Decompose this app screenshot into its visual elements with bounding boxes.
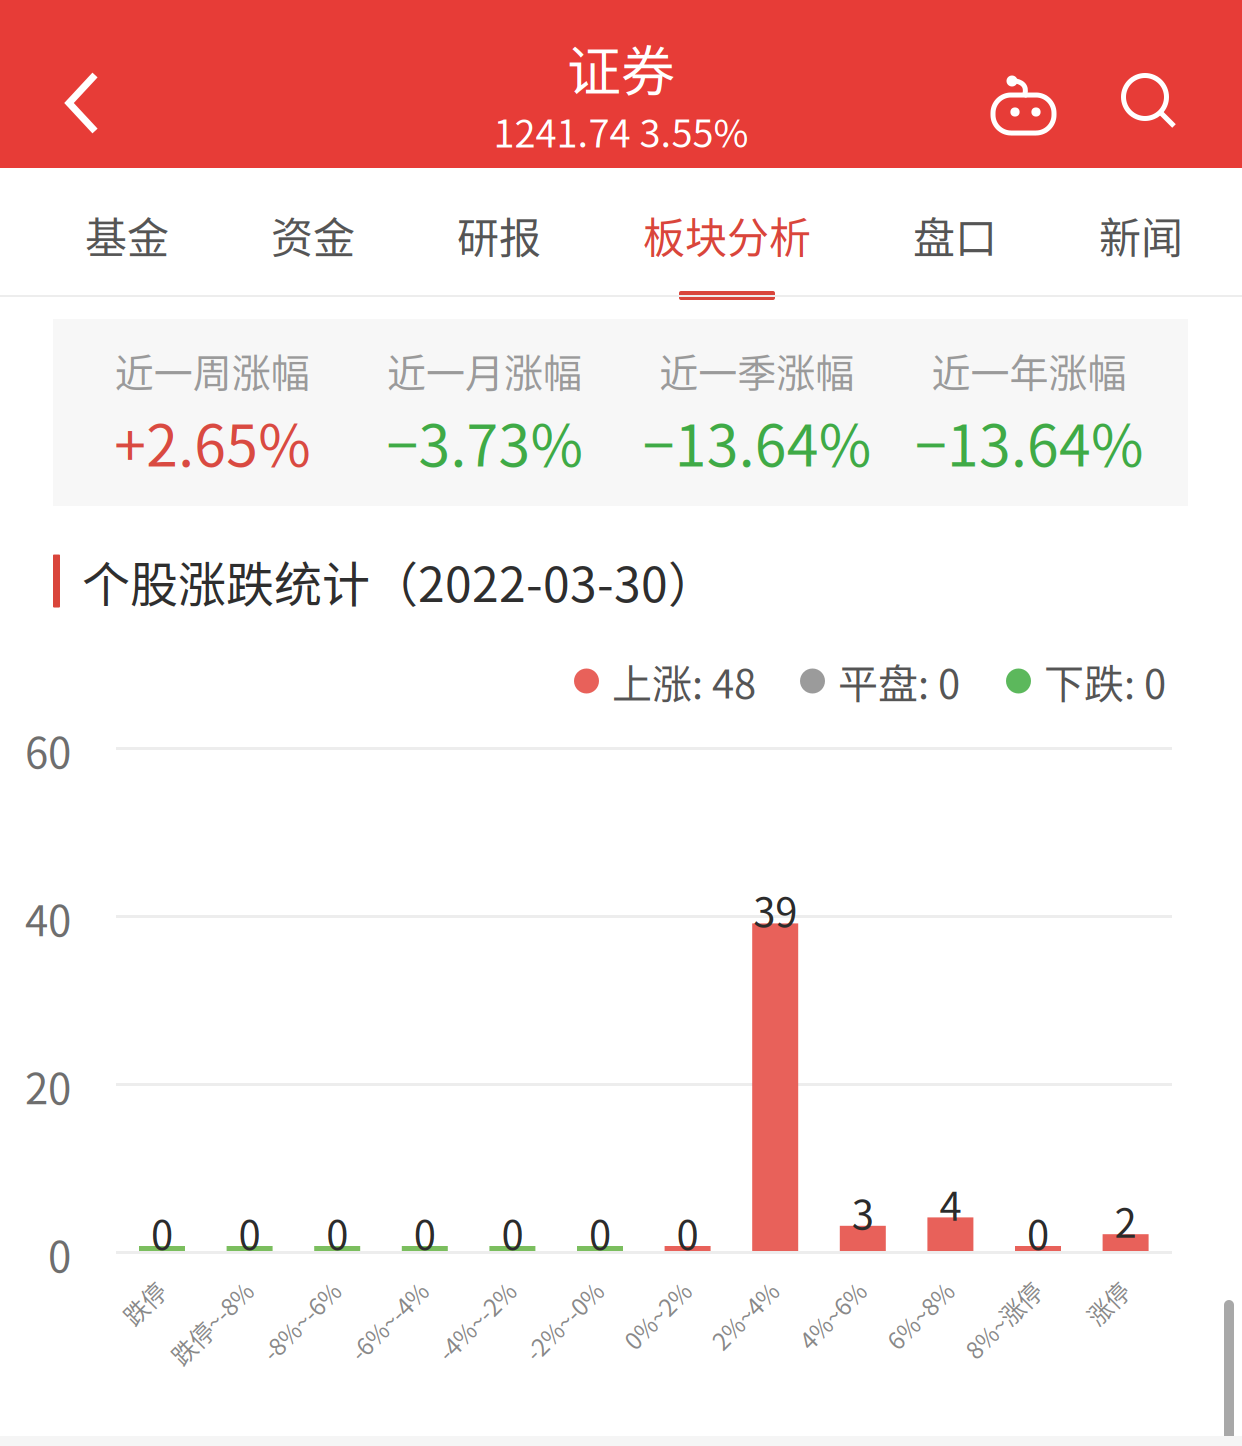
staticText: 0 <box>501 1203 523 1261</box>
staticText: 0 <box>239 1203 261 1261</box>
staticText: 0 <box>48 1224 71 1284</box>
staticText: 6%~8% <box>849 1276 932 1310</box>
staticText: 4%~6% <box>762 1276 845 1310</box>
staticText: 60 <box>25 720 71 780</box>
staticText: 跌停 <box>96 1276 144 1310</box>
button[interactable]: Search <box>1121 73 1177 129</box>
staticText: 近一周涨幅 <box>115 342 310 398</box>
staticText: 板块分析 <box>643 205 811 265</box>
staticText: 8%~涨停 <box>924 1276 1020 1310</box>
staticText: 2 <box>1115 1191 1137 1249</box>
staticText: 基金 <box>85 205 169 265</box>
staticText: −13.64% <box>643 400 871 483</box>
staticText: −3.73% <box>386 400 582 483</box>
button[interactable]: 新闻 <box>1099 168 1183 301</box>
staticText: 近一月涨幅 <box>387 342 582 398</box>
button[interactable]: 研报 <box>457 168 541 301</box>
staticText: +2.65% <box>114 400 310 483</box>
staticText: 个股涨跌统计（2022-03-30） <box>82 546 716 616</box>
staticText: 跌停~-8% <box>128 1276 232 1310</box>
staticText: -8%~-6% <box>220 1276 319 1310</box>
staticText: -2%~-0% <box>483 1276 582 1310</box>
staticText: 0 <box>151 1203 173 1261</box>
staticText: 新闻 <box>1099 205 1183 265</box>
staticText: −13.64% <box>915 400 1143 483</box>
staticText: 盘口 <box>913 205 997 265</box>
staticText: 4 <box>939 1174 961 1232</box>
staticText: 3 <box>852 1183 874 1241</box>
staticText: 2%~4% <box>674 1276 757 1310</box>
staticText: 0 <box>1027 1203 1049 1261</box>
staticText: 近一年涨幅 <box>931 342 1126 398</box>
staticText: 20 <box>25 1056 71 1116</box>
staticText: 0 <box>677 1203 699 1261</box>
staticText: 0 <box>589 1203 611 1261</box>
staticText: -6%~-4% <box>308 1276 407 1310</box>
staticText: 上涨: 48 <box>612 652 756 710</box>
button[interactable]: 板块分析 <box>643 168 811 301</box>
staticText: 0%~2% <box>587 1276 670 1310</box>
staticText: 0 <box>414 1203 436 1261</box>
staticText: 平盘: 0 <box>838 652 960 710</box>
button[interactable]: Assistant <box>993 76 1054 134</box>
staticText: 39 <box>753 880 797 938</box>
staticText: 40 <box>25 888 71 948</box>
staticText: 证券 <box>567 29 675 107</box>
staticText: 0 <box>326 1203 348 1261</box>
button[interactable]: 盘口 <box>913 168 997 301</box>
staticText: 资金 <box>271 205 355 265</box>
staticText: 研报 <box>457 205 541 265</box>
staticText: 近一季涨幅 <box>659 342 854 398</box>
staticText: -4%~-2% <box>395 1276 494 1310</box>
staticText: 1241.74 3.55% <box>493 103 748 158</box>
staticText: 涨停 <box>1060 1276 1108 1310</box>
button[interactable]: 基金 <box>85 168 169 301</box>
staticText: 下跌: 0 <box>1044 652 1166 710</box>
button[interactable]: 资金 <box>271 168 355 301</box>
button[interactable]: Back <box>26 47 138 159</box>
